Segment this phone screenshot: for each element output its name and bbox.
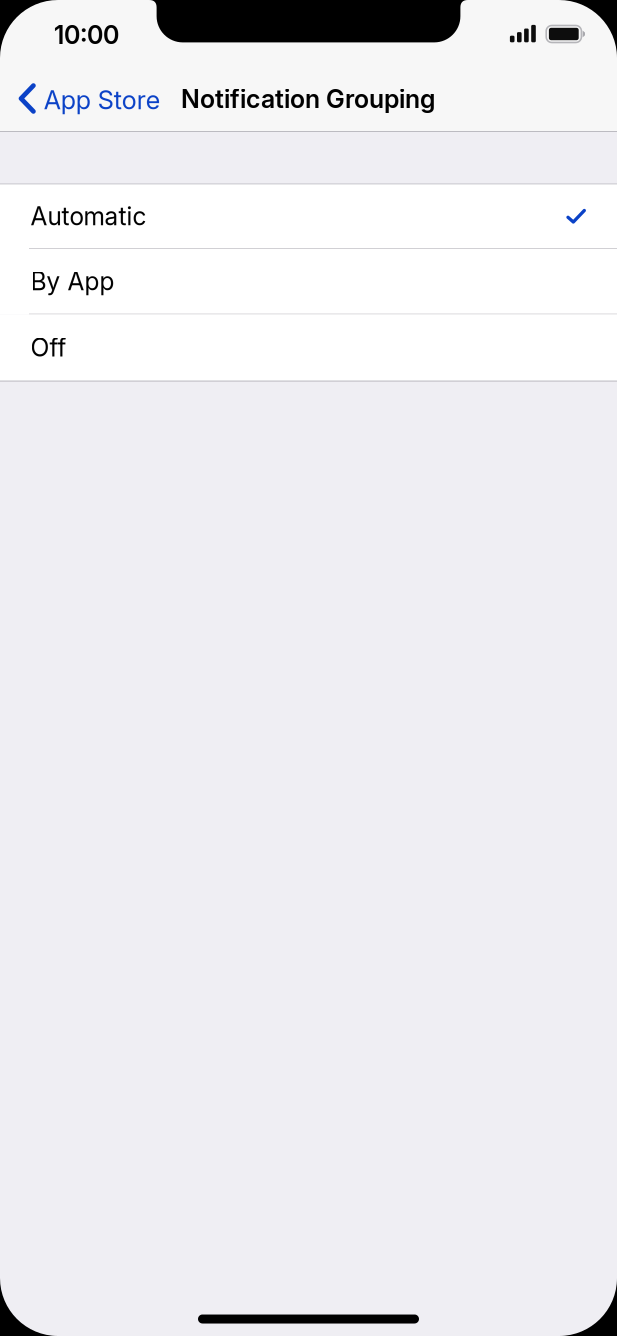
- button[interactable]: Off: [0, 314, 617, 381]
- staticText: Automatic: [30, 201, 146, 231]
- button[interactable]: Automatic: [0, 184, 617, 249]
- button[interactable]: App Store: [0, 70, 168, 126]
- button[interactable]: By App: [0, 249, 617, 314]
- staticText: Notification Grouping: [181, 84, 435, 114]
- staticText: By App: [30, 266, 114, 296]
- staticText: 10:00: [54, 20, 119, 50]
- staticText: App Store: [44, 85, 160, 115]
- staticText: Off: [30, 333, 66, 362]
